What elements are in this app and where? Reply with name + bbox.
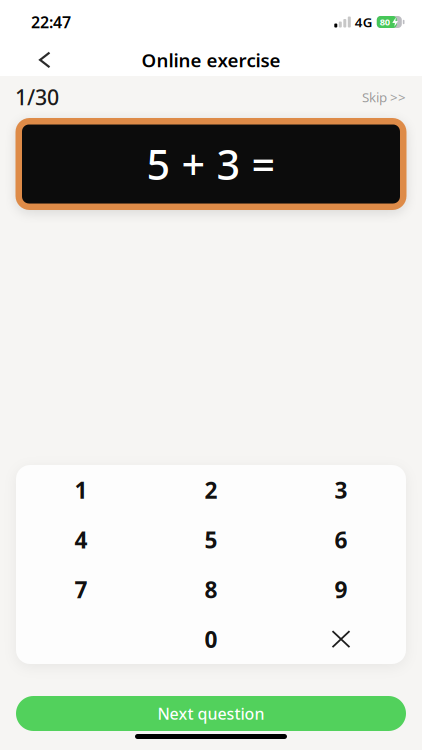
staticText: 7 bbox=[74, 574, 87, 604]
button[interactable]: 4 bbox=[16, 515, 146, 565]
button[interactable]: 3 bbox=[276, 465, 406, 515]
button[interactable]: 2 bbox=[146, 465, 276, 515]
staticText: Skip >> bbox=[362, 88, 406, 106]
button[interactable]: 7 bbox=[16, 564, 146, 614]
staticText: 8 bbox=[204, 574, 217, 604]
button[interactable]: 0 bbox=[146, 614, 276, 664]
staticText: 2 bbox=[204, 475, 217, 505]
staticText: 4G bbox=[355, 13, 373, 31]
staticText: 0 bbox=[204, 624, 217, 654]
staticText: 22:47 bbox=[31, 11, 71, 33]
button[interactable]: Delete bbox=[276, 614, 406, 664]
staticText: 3 bbox=[334, 475, 347, 505]
staticText: 1/30 bbox=[15, 83, 59, 111]
button[interactable]: Skip >> bbox=[362, 88, 406, 106]
button[interactable]: 8 bbox=[146, 564, 276, 614]
staticText: 9 bbox=[334, 574, 347, 604]
staticText: 6 bbox=[334, 525, 347, 555]
staticText: 4 bbox=[74, 525, 87, 555]
staticText: 80 bbox=[380, 16, 390, 28]
button[interactable]: Next question bbox=[16, 696, 406, 731]
button[interactable]: 9 bbox=[276, 564, 406, 614]
button[interactable]: Back bbox=[0, 47, 63, 72]
staticText: 1 bbox=[74, 475, 87, 505]
button[interactable]: 1 bbox=[16, 465, 146, 515]
button[interactable]: 5 bbox=[146, 515, 276, 565]
staticText: 5 bbox=[204, 525, 217, 555]
staticText: Online exercise bbox=[141, 48, 280, 72]
button[interactable]: 6 bbox=[276, 515, 406, 565]
staticText: 5 + 3 = bbox=[146, 137, 275, 191]
staticText: Next question bbox=[157, 703, 264, 724]
